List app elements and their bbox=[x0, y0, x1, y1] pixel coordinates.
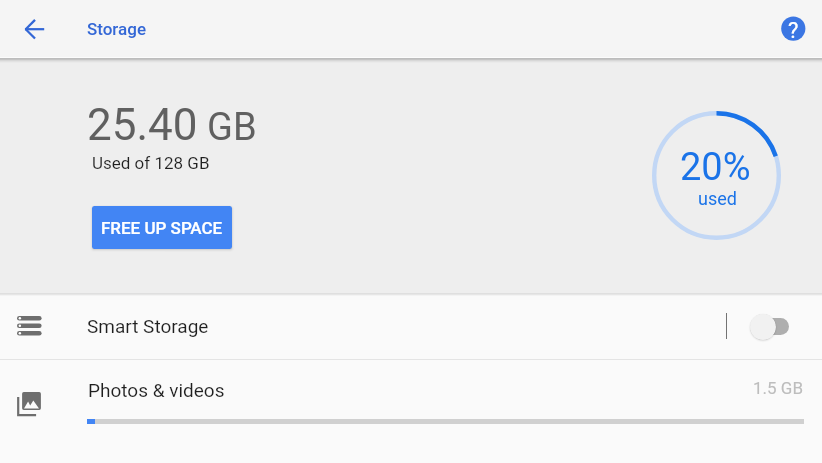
button[interactable]: Smart Storage toggle bbox=[744, 309, 796, 345]
staticText: 20% bbox=[680, 145, 751, 190]
staticText: 25.40 bbox=[87, 99, 198, 151]
button[interactable]: Photos & videos bbox=[0, 360, 822, 463]
staticText: ? bbox=[788, 18, 799, 44]
button[interactable]: Navigate up bbox=[9, 9, 49, 49]
staticText: Photos & videos bbox=[88, 379, 225, 401]
staticText: 1.5 GB bbox=[753, 378, 803, 398]
staticText: FREE UP SPACE bbox=[101, 218, 223, 238]
button[interactable]: Smart Storage bbox=[0, 296, 822, 359]
staticText: Used of 128 GB bbox=[92, 153, 210, 173]
staticText: used bbox=[698, 188, 737, 209]
staticText: Storage bbox=[87, 19, 147, 39]
staticText: GB bbox=[207, 105, 257, 150]
button[interactable]: FREE UP SPACE bbox=[92, 206, 232, 249]
button[interactable]: Help bbox=[773, 9, 813, 49]
staticText: Smart Storage bbox=[87, 315, 209, 337]
